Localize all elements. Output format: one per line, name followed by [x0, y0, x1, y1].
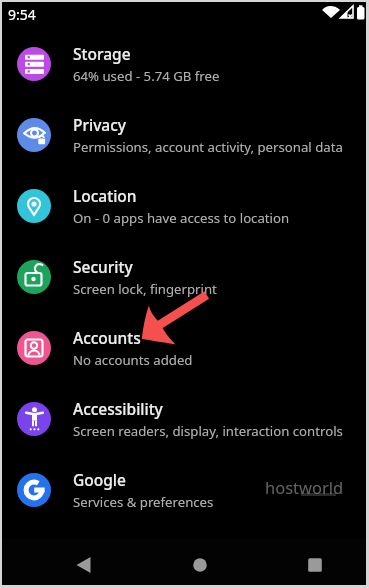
staticText: 9:54	[8, 5, 36, 24]
staticText: Screen lock, fingerprint	[73, 280, 217, 298]
staticText: 64% used - 5.74 GB free	[73, 67, 220, 85]
button[interactable]: Accessibility	[2, 383, 366, 454]
button[interactable]	[124, 539, 245, 585]
button[interactable]: Privacy	[2, 99, 366, 170]
button[interactable]	[2, 539, 124, 585]
staticText: Accounts	[73, 327, 141, 348]
staticText: No accounts added	[73, 351, 193, 369]
staticText: Security	[73, 256, 133, 277]
button[interactable]	[245, 539, 366, 585]
staticText: Google	[73, 469, 126, 490]
button[interactable]: Location	[2, 170, 366, 241]
button[interactable]: Storage	[2, 28, 366, 99]
staticText: Services & preferences	[73, 493, 214, 511]
staticText: Location	[73, 185, 137, 206]
button[interactable]: Accounts	[2, 312, 366, 383]
staticText: Permissions, account activity, personal …	[73, 138, 343, 156]
staticText: Accessibility	[73, 398, 163, 419]
button[interactable]: Google	[2, 454, 366, 525]
staticText: Screen readers, display, interaction con…	[73, 422, 343, 440]
button[interactable]: Security	[2, 241, 366, 312]
staticText: hostworld	[265, 476, 344, 498]
staticText: Storage	[73, 43, 131, 64]
staticText: Privacy	[73, 114, 127, 135]
staticText: On - 0 apps have access to location	[73, 209, 290, 227]
